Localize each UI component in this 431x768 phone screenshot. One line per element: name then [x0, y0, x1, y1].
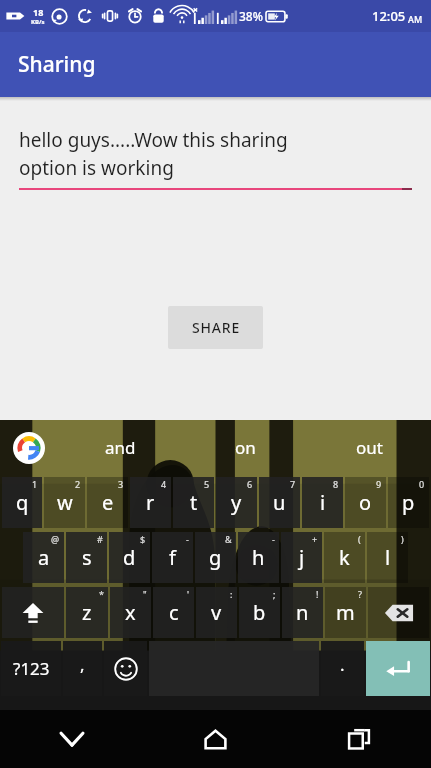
button[interactable]: i [302, 477, 343, 528]
staticText: y [231, 489, 242, 516]
button[interactable]: hello guys.....Wow this sharing option i… [19, 127, 412, 190]
staticText: 6 [247, 478, 253, 490]
staticText: s [82, 544, 92, 571]
button[interactable]: and [58, 420, 183, 475]
button[interactable]: f [152, 532, 193, 583]
staticText: q [16, 489, 29, 516]
button[interactable]: q [2, 477, 42, 528]
button[interactable]: out [307, 420, 431, 475]
button[interactable]: t [173, 477, 214, 528]
button[interactable]: Enter [366, 641, 430, 696]
button[interactable]: e [87, 477, 128, 528]
button[interactable]: g [195, 532, 236, 583]
button[interactable]: Hide keyboard [0, 710, 143, 768]
button[interactable]: h [238, 532, 279, 583]
staticText: ? [358, 588, 362, 600]
button[interactable]: Shift [2, 587, 64, 638]
staticText: # [97, 533, 103, 545]
staticText: v [211, 599, 222, 626]
staticText: ?123 [13, 657, 50, 680]
staticText: b [253, 599, 266, 626]
staticText: h [252, 544, 265, 571]
staticText: e [102, 489, 114, 516]
button[interactable]: r [130, 477, 171, 528]
button[interactable]: . [321, 641, 364, 696]
staticText: j [299, 544, 305, 571]
staticText: AM [408, 13, 423, 25]
staticText: Sharing [18, 50, 96, 79]
button[interactable]: n [282, 587, 323, 638]
staticText: 0 [419, 478, 425, 490]
staticText: c [169, 599, 179, 626]
button[interactable]: Home [143, 710, 287, 768]
staticText: d [123, 544, 136, 571]
staticText: , [80, 653, 85, 676]
staticText: ! [316, 588, 319, 600]
staticText: k [339, 544, 350, 571]
button[interactable]: SHARE [168, 306, 263, 349]
staticText: and [105, 436, 136, 459]
button[interactable]: on [183, 420, 307, 475]
staticText: 9 [376, 478, 382, 490]
staticText: SHARE [192, 318, 240, 337]
button[interactable]: m [325, 587, 366, 638]
staticText: on [235, 436, 256, 459]
staticText: 3 [118, 478, 124, 490]
button[interactable]: k [324, 532, 365, 583]
staticText: 2 [75, 478, 81, 490]
staticText: 8 [333, 478, 339, 490]
button[interactable]: l [367, 532, 408, 583]
staticText: i [320, 489, 326, 516]
staticText: 1 [32, 478, 38, 490]
staticText: n [296, 599, 309, 626]
button[interactable]: a [23, 532, 64, 583]
staticText: f [169, 544, 176, 571]
staticText: + [312, 533, 318, 545]
button[interactable]: , [63, 641, 102, 696]
staticText: hello guys.....Wow this sharing option i… [19, 127, 288, 181]
button[interactable]: u [259, 477, 300, 528]
staticText: * [99, 588, 104, 600]
staticText: ' [187, 588, 190, 600]
staticText: ( [358, 533, 361, 545]
button[interactable]: z [66, 587, 108, 638]
button[interactable]: Google search [0, 420, 58, 475]
staticText: ) [401, 533, 404, 545]
button[interactable]: v [196, 587, 237, 638]
button[interactable]: ?123 [1, 641, 61, 696]
staticText: a [38, 544, 50, 571]
button[interactable]: b [239, 587, 280, 638]
staticText: & [225, 533, 232, 545]
staticText: 12:05 [372, 7, 406, 25]
button[interactable]: o [345, 477, 386, 528]
button[interactable]: d [109, 532, 150, 583]
staticText: g [209, 544, 222, 571]
staticText: ; [273, 588, 276, 600]
staticText: - [272, 533, 275, 545]
staticText: z [82, 599, 92, 626]
staticText: $ [140, 533, 146, 545]
button[interactable]: c [153, 587, 194, 638]
button[interactable]: Emoji [104, 641, 147, 696]
button[interactable]: Recent apps [287, 710, 431, 768]
button[interactable]: j [281, 532, 322, 583]
button[interactable]: s [66, 532, 107, 583]
staticText: u [273, 489, 286, 516]
staticText: 4 [161, 478, 167, 490]
staticText: l [385, 544, 391, 571]
button[interactable]: x [110, 587, 151, 638]
staticText: out [356, 436, 383, 459]
button[interactable]: w [44, 477, 85, 528]
staticText: o [359, 489, 372, 516]
button[interactable]: Backspace [368, 587, 429, 638]
staticText: 38% [239, 8, 263, 24]
staticText: r [146, 489, 155, 516]
staticText: 18 [33, 6, 44, 18]
button[interactable]: y [216, 477, 257, 528]
staticText: w [57, 489, 73, 516]
staticText: p [402, 489, 415, 516]
staticText: m [336, 599, 355, 626]
staticText: x [125, 599, 136, 626]
button[interactable]: p [388, 477, 429, 528]
